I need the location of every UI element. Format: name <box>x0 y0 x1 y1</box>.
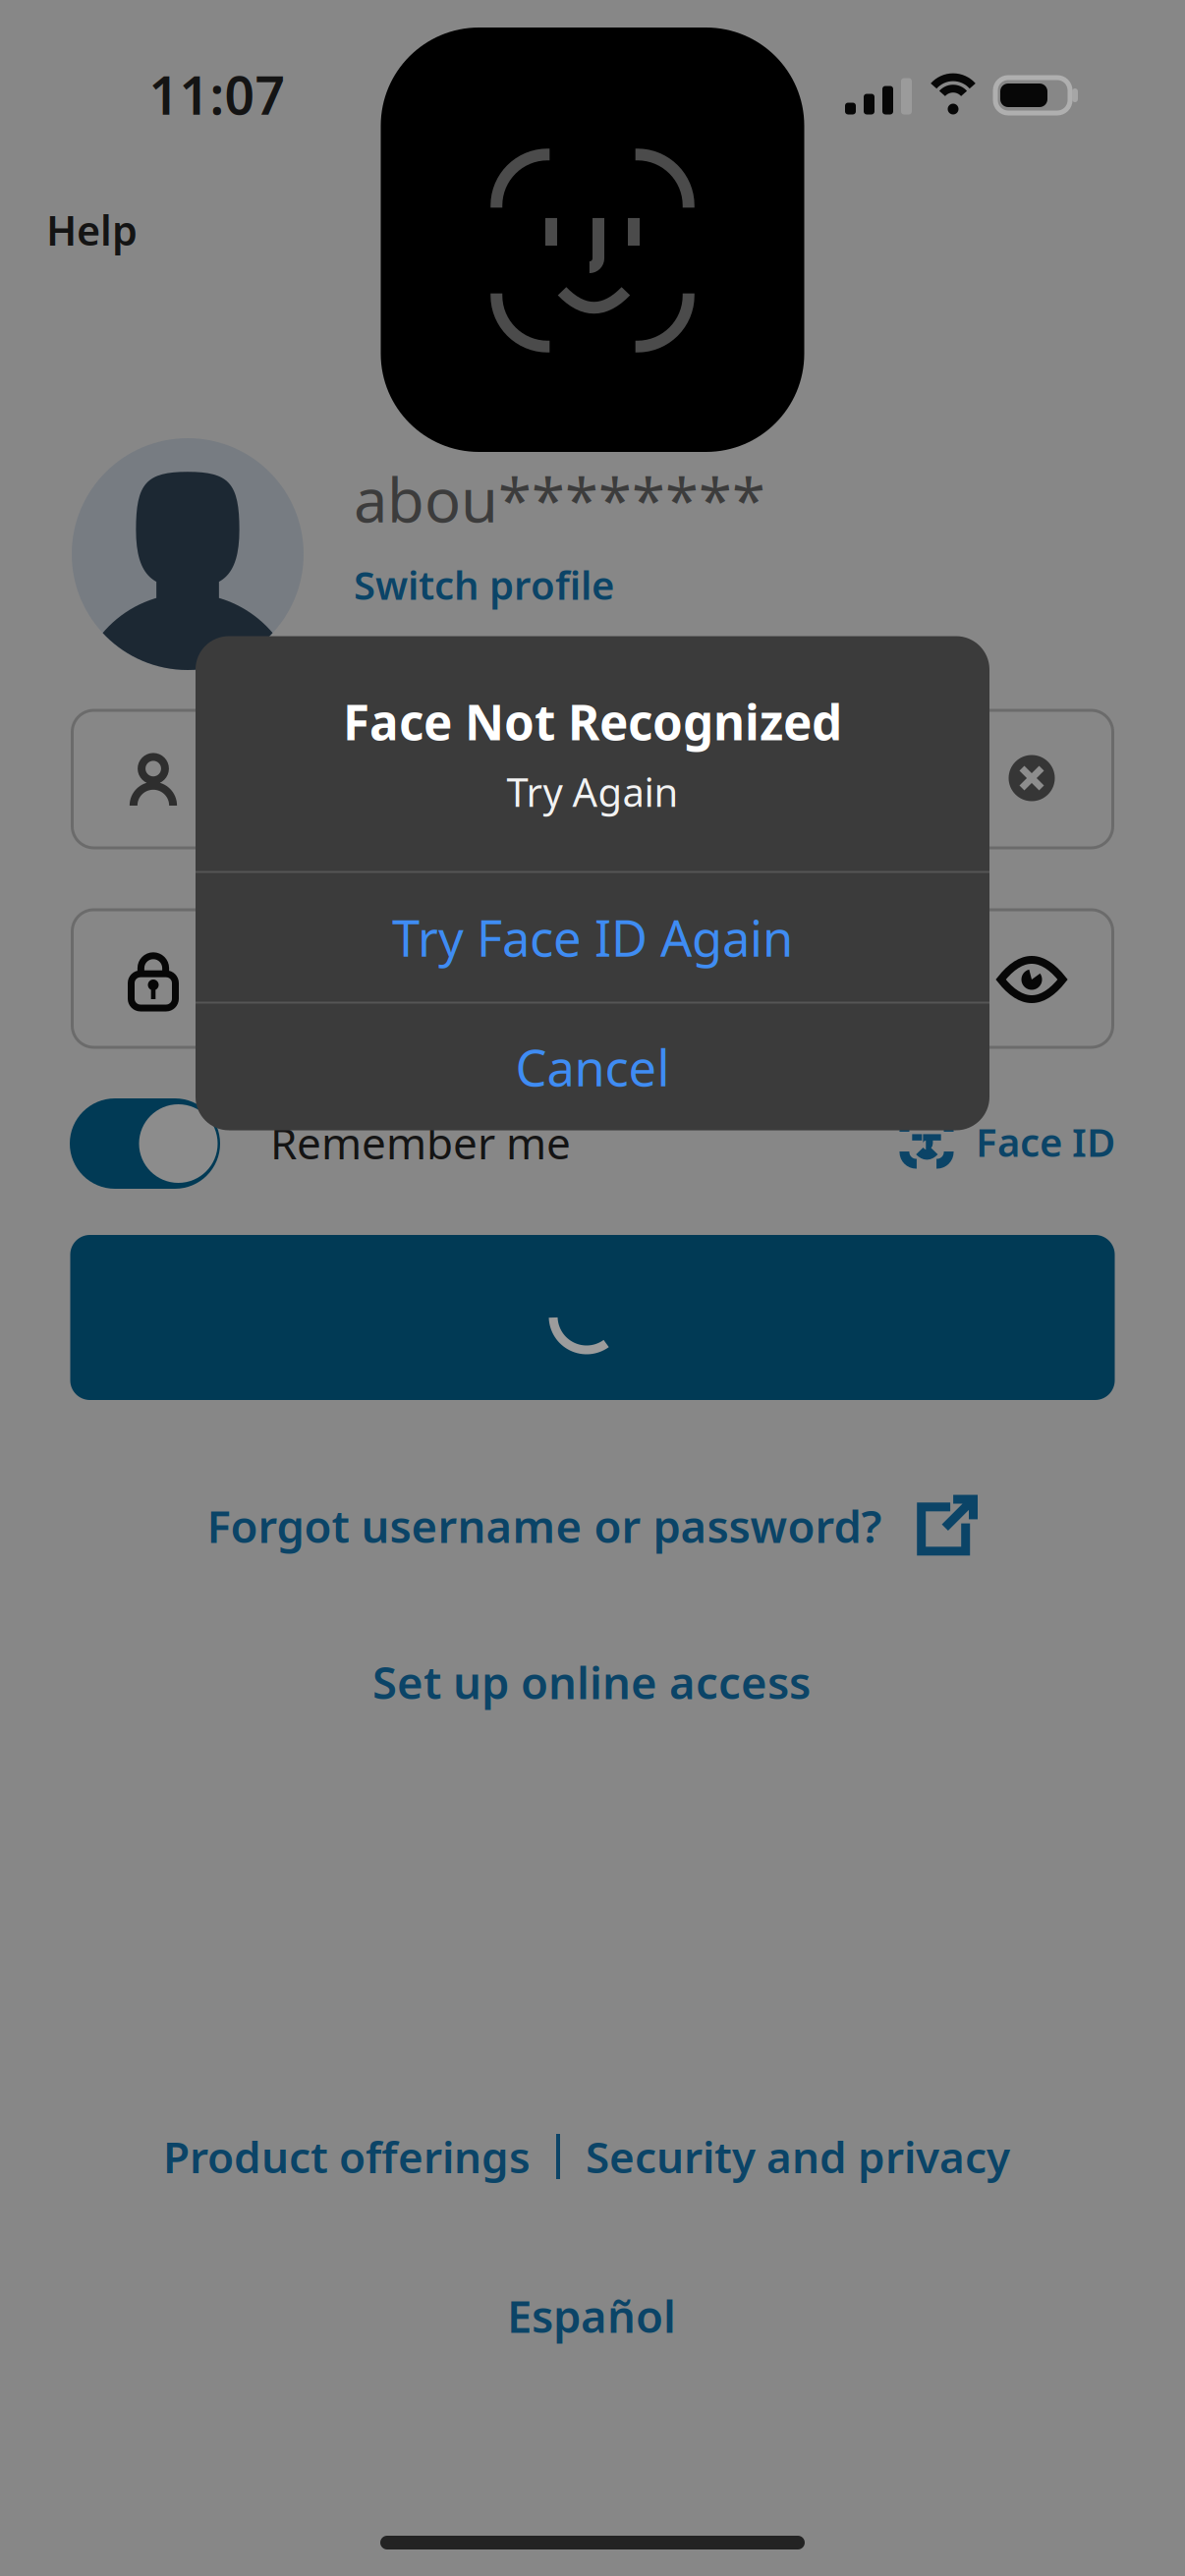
button[interactable]: Show password <box>985 932 1079 1027</box>
button[interactable]: Remember me <box>70 1098 221 1189</box>
button[interactable]: Forgot username or password? <box>179 1479 1004 1573</box>
button[interactable]: Switch profile <box>354 552 639 617</box>
staticText: Face Not Recognized <box>343 689 842 754</box>
staticText: Product offerings <box>163 2128 531 2185</box>
staticText: Remember me <box>270 1114 571 1171</box>
staticText: Security and privacy <box>586 2128 1010 2185</box>
button[interactable]: Product offerings <box>163 2116 531 2197</box>
staticText: Switch profile <box>354 558 614 611</box>
button[interactable]: Cancel <box>196 1004 989 1130</box>
button[interactable]: Security and privacy <box>586 2116 1010 2197</box>
button[interactable]: Signing in <box>70 1235 1115 1400</box>
button[interactable]: Help <box>46 193 174 267</box>
button[interactable]: Face ID <box>870 1102 1115 1181</box>
staticText: Try Again <box>507 766 678 818</box>
staticText: Set up online access <box>372 1652 811 1712</box>
staticText: Face ID <box>976 1115 1115 1168</box>
staticText: Help <box>46 203 138 257</box>
staticText: Try Face ID Again <box>392 904 793 970</box>
staticText: abou******** <box>354 459 765 539</box>
button[interactable]: Try Face ID Again <box>196 873 989 1002</box>
staticText: Forgot username or password? <box>207 1496 882 1555</box>
button[interactable]: Clear username <box>989 736 1074 820</box>
button[interactable]: Español <box>464 2273 719 2358</box>
staticText: abou******** <box>216 743 592 816</box>
staticText: Cancel <box>515 1034 670 1100</box>
staticText: 11:07 <box>149 60 285 129</box>
staticText: Español <box>507 2286 676 2345</box>
button[interactable]: Set up online access <box>336 1640 847 1724</box>
